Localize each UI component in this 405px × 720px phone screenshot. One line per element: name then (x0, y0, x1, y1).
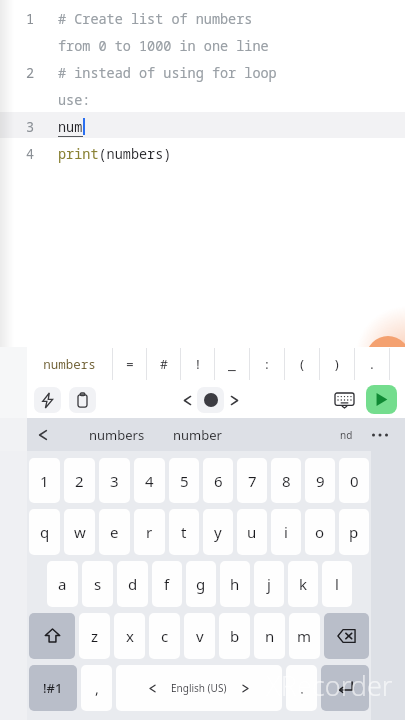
button[interactable]: ) (320, 347, 354, 381)
staticText: l (335, 574, 339, 594)
button[interactable]: Paste (69, 387, 96, 413)
button[interactable]: 7 (237, 458, 267, 503)
staticText: ) (333, 355, 341, 373)
staticText: 7 (248, 471, 257, 491)
button[interactable]: Cursor control (197, 387, 224, 413)
button[interactable]: numbers (27, 347, 112, 381)
staticText: numbers (43, 356, 96, 373)
staticText: . (368, 355, 376, 373)
staticText: q (40, 522, 50, 542)
button[interactable]: ! (181, 347, 214, 381)
button[interactable]: a (47, 561, 78, 607)
button[interactable]: n (254, 613, 285, 659)
staticText: n (265, 626, 275, 646)
button[interactable]: e (99, 509, 130, 555)
button[interactable]: Insert snippet (34, 387, 61, 413)
button[interactable]: Previous (177, 386, 197, 414)
staticText: use: (58, 91, 91, 109)
button[interactable]: Enter (321, 665, 369, 711)
button[interactable]: 1 (29, 458, 60, 503)
button[interactable]: s (82, 561, 113, 607)
button[interactable]: f (152, 561, 182, 607)
staticText: h (230, 574, 240, 594)
button[interactable]: b (219, 613, 250, 659)
button[interactable]: 4 (134, 458, 165, 503)
button[interactable]: nd (340, 428, 353, 442)
button[interactable]: = (113, 347, 146, 381)
button[interactable]: numbers (89, 426, 145, 444)
staticText: !#1 (43, 679, 63, 697)
staticText: 8 (282, 471, 291, 491)
staticText: r (146, 522, 153, 542)
button[interactable]: u (237, 509, 267, 555)
button[interactable]: i (271, 509, 301, 555)
button[interactable]: Back (27, 419, 59, 451)
staticText: num (58, 118, 83, 136)
staticText: x (126, 626, 134, 646)
staticText: . (300, 679, 304, 698)
staticText: t (181, 522, 187, 542)
button[interactable]: w (64, 509, 95, 555)
staticText: i (284, 522, 288, 542)
button[interactable]: t (169, 509, 199, 555)
button[interactable]: 5 (169, 458, 199, 503)
staticText: d (128, 574, 138, 594)
button[interactable]: , (81, 665, 112, 711)
button[interactable]: d (117, 561, 148, 607)
staticText: 1 (26, 10, 35, 28)
button[interactable]: Next (224, 386, 244, 414)
button[interactable]: Backspace (324, 613, 369, 659)
staticText: 1 (40, 471, 49, 491)
button[interactable]: 8 (271, 458, 301, 503)
button[interactable]: _ (215, 347, 249, 381)
button[interactable]: v (184, 613, 215, 659)
button[interactable]: g (186, 561, 216, 607)
button[interactable]: q (29, 509, 60, 555)
button[interactable]: k (288, 561, 318, 607)
button[interactable]: Run (366, 385, 397, 414)
button[interactable]: h (220, 561, 250, 607)
button[interactable]: 9 (305, 458, 335, 503)
staticText: b (230, 626, 240, 646)
button[interactable]: c (149, 613, 180, 659)
button[interactable]: m (289, 613, 320, 659)
button[interactable]: !#1 (29, 665, 77, 711)
button[interactable]: 0 (339, 458, 369, 503)
button[interactable]: l (322, 561, 352, 607)
staticText: print(numbers) (58, 145, 172, 163)
button[interactable]: ( (285, 347, 319, 381)
button[interactable]: j (254, 561, 284, 607)
button[interactable]: o (305, 509, 335, 555)
staticText: : (263, 355, 271, 373)
button[interactable]: . (355, 347, 389, 381)
button[interactable]: x (114, 613, 145, 659)
button[interactable]: 2 (64, 458, 95, 503)
staticText: 9 (316, 471, 325, 491)
staticText: 2 (26, 64, 35, 82)
staticText: 3 (110, 471, 119, 491)
button[interactable]: number (173, 426, 222, 444)
button[interactable]: 6 (203, 458, 233, 503)
staticText: 4 (145, 471, 154, 491)
button[interactable]: More options (367, 422, 393, 448)
button[interactable]: p (339, 509, 369, 555)
staticText: # Create list of numbers (58, 10, 253, 28)
staticText: 5 (180, 471, 189, 491)
button[interactable]: Hide keyboard (330, 386, 358, 414)
button[interactable]: z (79, 613, 110, 659)
button[interactable]: Space, English (US) (116, 665, 282, 711)
staticText: _ (228, 355, 236, 373)
staticText: a (58, 574, 67, 594)
button[interactable]: . (286, 665, 317, 711)
staticText: j (267, 574, 271, 594)
staticText: , (95, 679, 99, 698)
staticText: f (164, 574, 170, 594)
button[interactable]: r (134, 509, 165, 555)
button[interactable]: y (203, 509, 233, 555)
button[interactable]: # (147, 347, 180, 381)
button[interactable]: : (250, 347, 284, 381)
staticText: e (110, 522, 119, 542)
staticText: 6 (214, 471, 223, 491)
button[interactable]: Shift (29, 613, 75, 659)
button[interactable]: 3 (99, 458, 130, 503)
